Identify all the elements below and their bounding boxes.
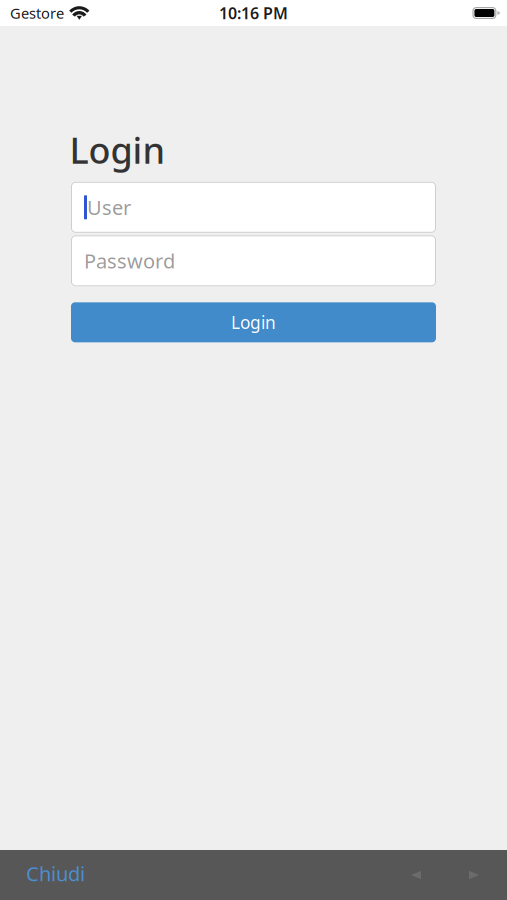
button[interactable]: Chiudi — [0, 850, 126, 900]
staticText: 10:16 PM — [219, 2, 288, 24]
staticText: Login — [69, 126, 165, 174]
staticText: Password — [84, 247, 175, 274]
staticText: Login — [231, 311, 276, 334]
button[interactable]: Login — [71, 302, 436, 342]
button[interactable]: User — [71, 182, 436, 233]
button[interactable]: Password — [71, 235, 436, 286]
staticText: Gestore — [10, 3, 64, 23]
staticText: User — [87, 194, 131, 221]
staticText: Chiudi — [26, 860, 85, 887]
